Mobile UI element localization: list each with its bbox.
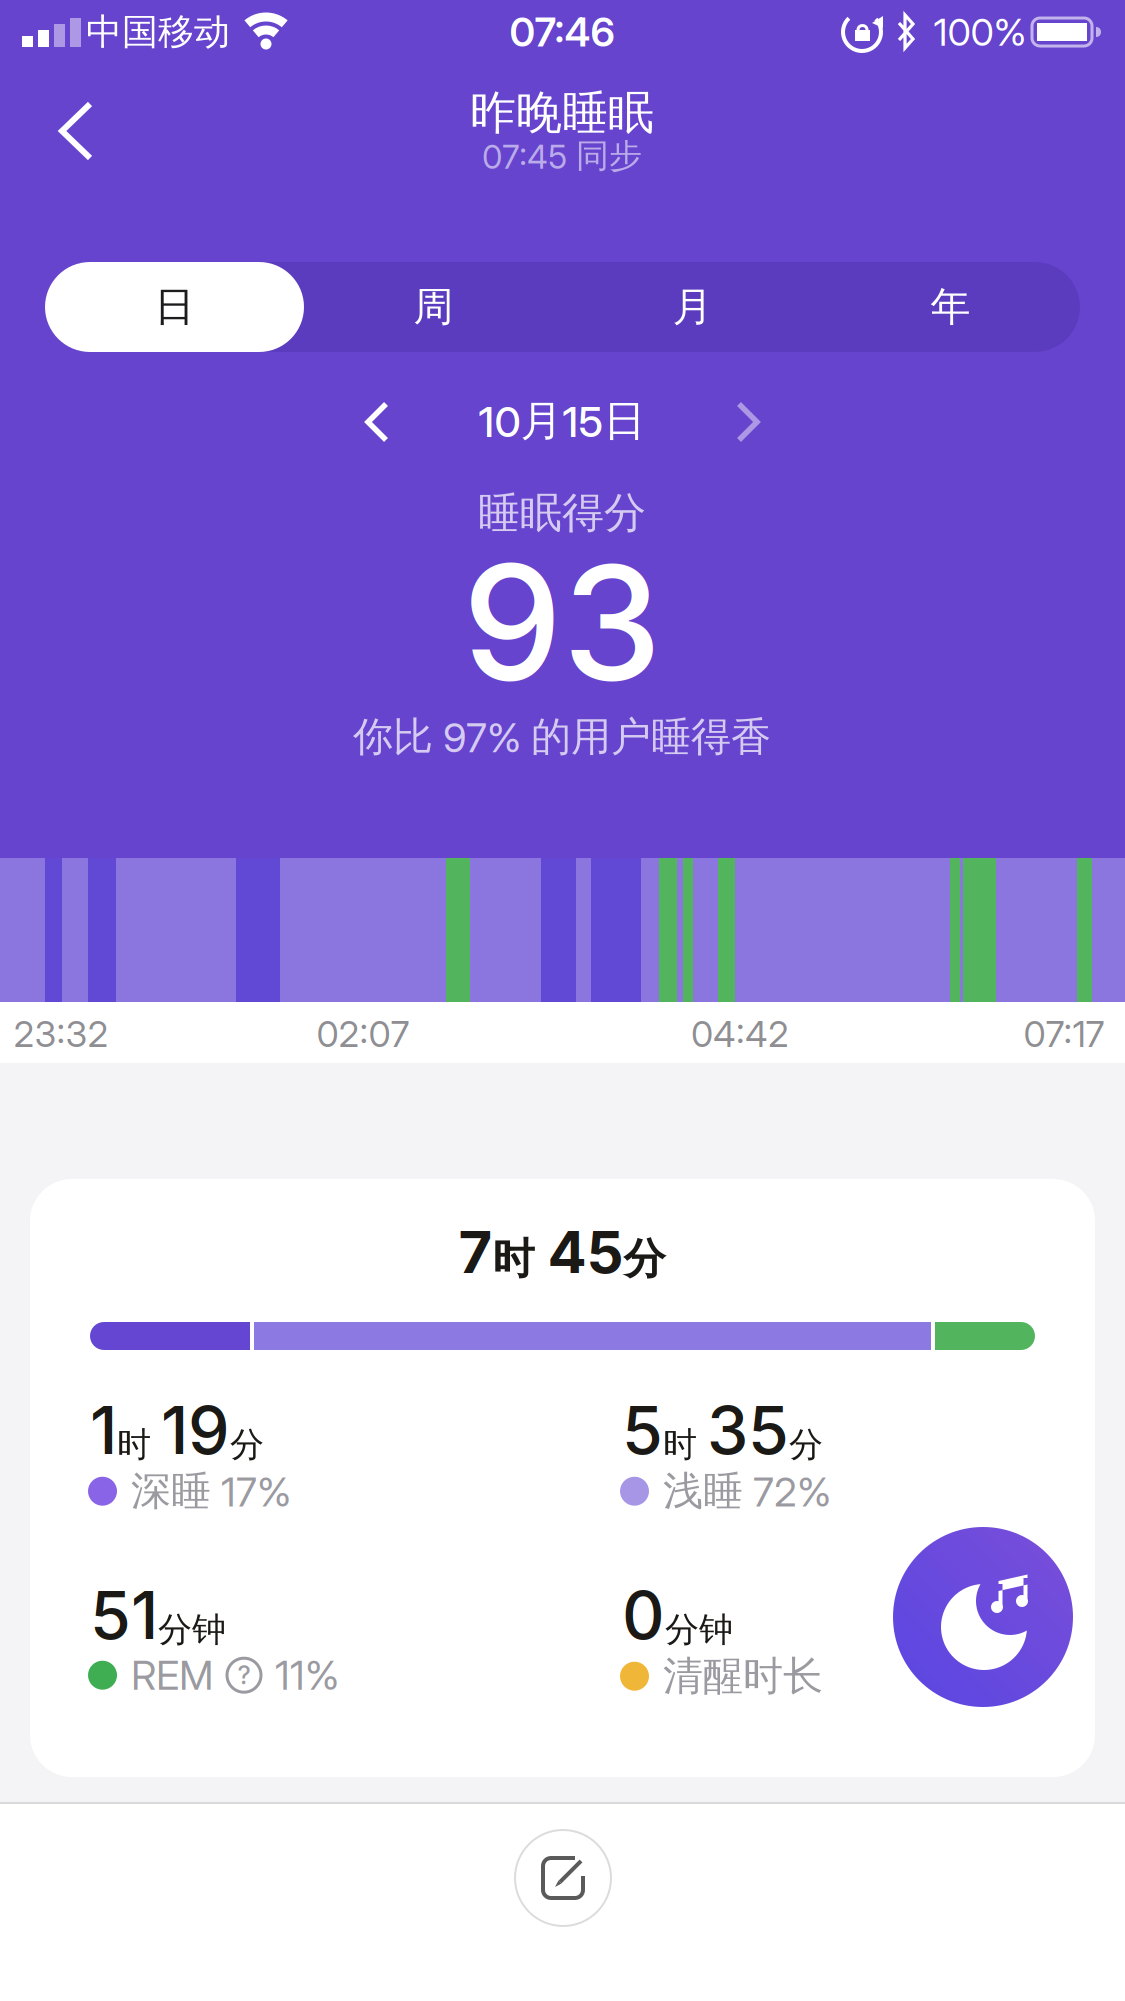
button[interactable]: 月: [563, 262, 822, 352]
staticText: 11%: [275, 1651, 339, 1699]
staticText: 月: [672, 282, 712, 332]
staticText: 周: [413, 282, 453, 332]
button[interactable]: [705, 399, 765, 445]
staticText: 10月15日: [478, 394, 645, 447]
staticText: 0分钟: [622, 1576, 733, 1654]
staticText: 1时 19分: [90, 1391, 264, 1469]
staticText: 07:45 同步: [482, 135, 642, 177]
staticText: 7时 45分: [458, 1218, 665, 1286]
staticText: ?: [237, 1660, 250, 1690]
staticText: 5时 35分: [622, 1391, 823, 1469]
staticText: 23:32: [13, 1012, 108, 1056]
button[interactable]: 日: [45, 262, 304, 352]
staticText: 51分钟: [90, 1576, 226, 1654]
button[interactable]: [893, 1527, 1073, 1707]
staticText: 你比 97% 的用户睡得香: [353, 712, 771, 762]
staticText: 日: [154, 282, 194, 332]
staticText: 02:07: [316, 1012, 409, 1056]
button[interactable]: [54, 98, 114, 164]
button[interactable]: [515, 1830, 611, 1926]
staticText: REM: [131, 1651, 213, 1699]
button[interactable]: 年: [821, 262, 1080, 352]
staticText: 昨晚睡眠: [470, 84, 654, 142]
staticText: 07:46: [509, 8, 614, 56]
staticText: 04:42: [691, 1012, 789, 1056]
button[interactable]: [360, 399, 420, 445]
staticText: 深睡 17%: [131, 1466, 291, 1516]
staticText: 93: [462, 526, 661, 718]
staticText: 中国移动: [86, 9, 230, 55]
staticText: 年: [930, 282, 970, 332]
staticText: 睡眠得分: [478, 486, 646, 539]
staticText: 浅睡 72%: [663, 1466, 831, 1516]
staticText: 清醒时长: [663, 1651, 823, 1701]
staticText: 07:17: [1023, 1012, 1104, 1056]
staticText: 100%: [933, 9, 1026, 55]
button[interactable]: 周: [304, 262, 563, 352]
